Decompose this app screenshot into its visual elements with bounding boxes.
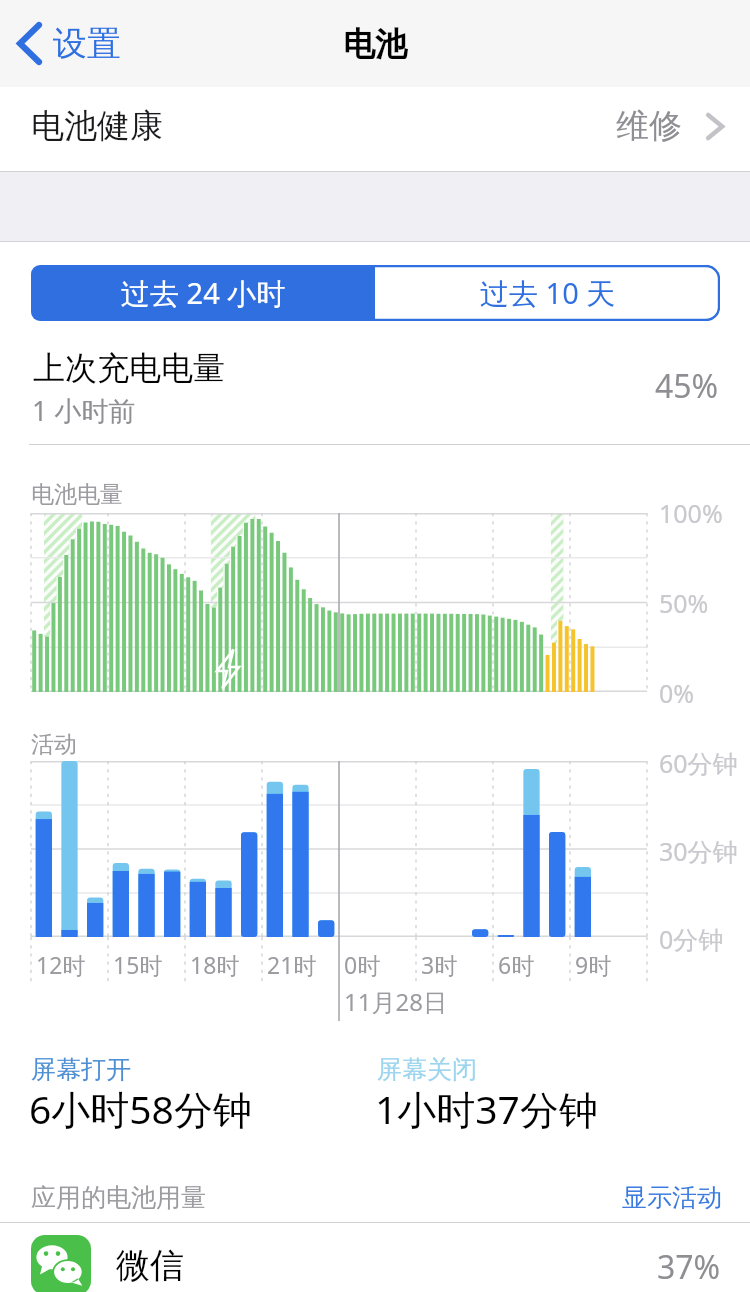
staticText: 37% [657,1245,721,1289]
staticText: 45% [655,364,719,408]
staticText: 0% [659,676,695,710]
staticText: 30分钟 [659,834,738,868]
staticText: 1 小时前 [32,392,136,429]
staticText: 电池电量 [31,480,123,509]
staticText: 显示活动 [622,1182,722,1213]
staticText: 21时 [267,949,317,980]
staticText: 15时 [113,949,163,980]
staticText: 上次充电电量 [33,348,225,388]
staticText: 设置 [53,22,121,65]
staticText: 应用的电池用量 [31,1182,206,1213]
staticText: 6时 [498,949,535,980]
button[interactable]: 设置 [0,12,133,75]
staticText: 100% [659,496,723,530]
staticText: 3时 [421,949,458,980]
staticText: 维修 [616,105,682,147]
staticText: 过去 10 天 [480,273,616,313]
staticText: 活动 [31,730,77,759]
staticText: 微信 [116,1244,184,1287]
staticText: 0分钟 [659,922,724,956]
staticText: 电池健康 [31,105,163,147]
staticText: 12时 [36,949,86,980]
staticText: 50% [659,586,709,620]
staticText: 18时 [190,949,240,980]
button[interactable]: 过去 24 小时 [31,265,375,321]
button[interactable]: 显示活动 [622,1182,722,1213]
staticText: 0时 [344,949,381,980]
staticText: 屏幕关闭 [377,1054,477,1085]
staticText: 9时 [575,949,612,980]
staticText: 6小时58分钟 [29,1082,252,1135]
staticText: 11月28日 [344,985,447,1018]
staticText: 60分钟 [659,746,738,780]
button[interactable]: 过去 10 天 [375,265,720,321]
staticText: 电池 [343,24,407,64]
button[interactable]: 电池健康 [0,87,750,171]
staticText: 1小时37分钟 [375,1082,598,1135]
button[interactable]: 微信 [0,1223,750,1292]
staticText: 过去 24 小时 [121,273,286,313]
staticText: 屏幕打开 [31,1054,131,1085]
